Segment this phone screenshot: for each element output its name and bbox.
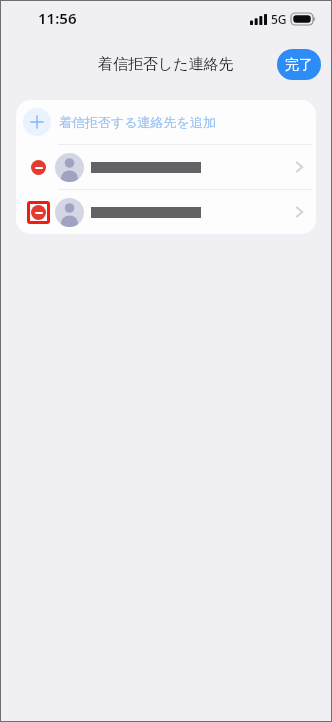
staticText: 11:56 <box>38 8 77 28</box>
staticText: 着信拒否した連絡先 <box>98 55 234 74</box>
staticText: 5G <box>271 11 287 27</box>
button[interactable]: Remove <box>31 160 46 175</box>
button[interactable]: Remove <box>31 205 46 220</box>
staticText: 着信拒否する連絡先を追加 <box>59 114 216 130</box>
button[interactable]: 着信拒否する連絡先を追加 <box>16 100 316 144</box>
other: Open <box>296 161 303 173</box>
other: Open <box>296 206 303 218</box>
staticText: 完了 <box>285 56 313 74</box>
button[interactable]: 完了 <box>277 49 321 80</box>
button[interactable]: Remove <box>16 145 316 189</box>
button[interactable]: Remove <box>16 190 316 234</box>
